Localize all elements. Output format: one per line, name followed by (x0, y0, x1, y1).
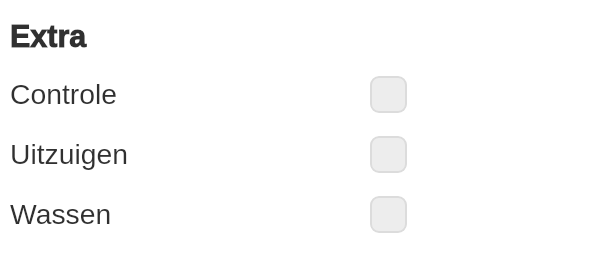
button[interactable]: Wassen, not checked (370, 196, 407, 233)
button[interactable]: Controle, not checked (370, 76, 407, 113)
button[interactable]: Uitzuigen, not checked (370, 136, 407, 173)
staticText: Controle (10, 78, 117, 110)
button[interactable]: Controle (0, 64, 604, 124)
button[interactable]: Wassen (0, 184, 604, 244)
button[interactable]: Uitzuigen (0, 124, 604, 184)
staticText: Extra (10, 19, 87, 53)
staticText: Wassen (10, 198, 112, 230)
staticText: Uitzuigen (10, 138, 128, 170)
